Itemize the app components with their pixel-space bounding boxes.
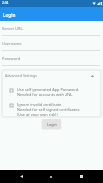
staticText: (Use at your own risk!) [17,112,58,116]
staticText: Server URL. [2,26,24,31]
staticText: Use self generated App Password. [17,87,80,92]
button[interactable]: Recent apps [74,170,88,183]
staticText: Needed for self signed certificates. [17,107,81,112]
staticText: Username [2,41,22,46]
button[interactable]: Username [0,40,103,51]
other: Collapse advanced settings [87,70,98,81]
staticText: 2:34 [2,1,9,5]
staticText: Advanced Settings [5,73,37,78]
button[interactable]: Back [14,170,28,183]
staticText: Needed for accounts with 2FA. [17,92,73,97]
staticText: Password [2,56,21,61]
staticText: Login [47,122,57,127]
button[interactable]: Password [0,55,103,66]
button[interactable]: Login [42,119,61,129]
button[interactable]: Ignore invalid certificate. [2,99,101,113]
button[interactable]: Server URL. [0,25,103,36]
staticText: Login [3,12,16,18]
button[interactable]: Advanced Settings [2,70,101,81]
button[interactable]: Home [44,170,58,183]
button[interactable]: Use self generated App Password. [2,84,101,98]
staticText: Ignore invalid certificate. [17,102,63,107]
